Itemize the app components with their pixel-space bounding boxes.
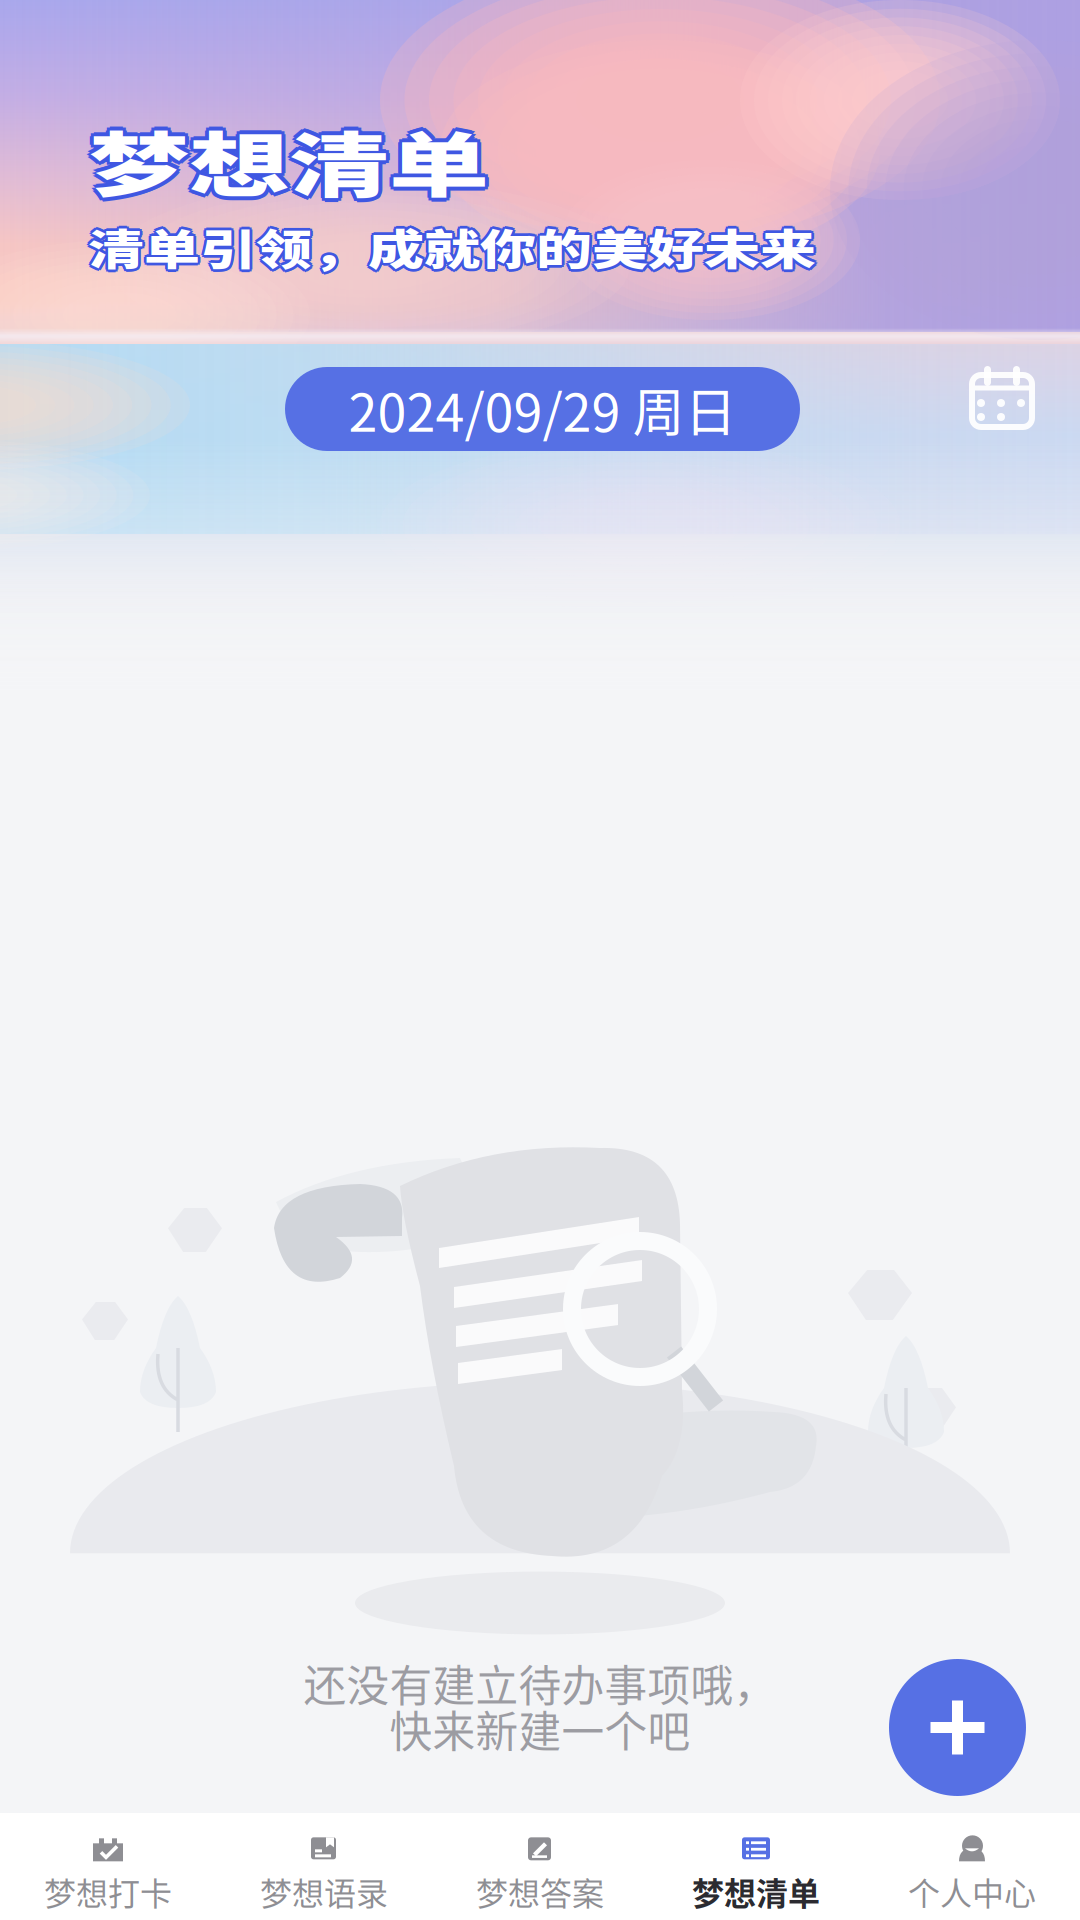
button[interactable]: 个人中心 (864, 1834, 1080, 1915)
staticText: 还没有建立待办事项哦， (303, 1652, 776, 1714)
staticText: 清单引领，成就你的美好未来 (90, 214, 818, 295)
staticText: 2024/09/29 周日 (348, 371, 736, 447)
staticText: 梦想清单 (86, 113, 486, 258)
staticText: 梦想清单 (89, 106, 489, 251)
staticText: 清单引领，成就你的美好未来 (86, 214, 814, 295)
staticText: 梦想答案 (476, 1868, 604, 1915)
staticText: 清单引领，成就你的美好未来 (88, 213, 816, 294)
staticText: 清单引领，成就你的美好未来 (86, 218, 814, 299)
staticText: 个人中心 (908, 1868, 1036, 1915)
button[interactable]: 梦想清单 (648, 1834, 864, 1915)
staticText: 清单引领，成就你的美好未来 (88, 216, 816, 297)
staticText: 梦想清单 (89, 110, 489, 255)
staticText: 清单引领，成就你的美好未来 (91, 216, 819, 297)
staticText: 梦想清单 (93, 110, 493, 255)
staticText: 清单引领，成就你的美好未来 (85, 216, 813, 297)
staticText: 梦想清单 (85, 110, 485, 255)
staticText: 梦想语录 (260, 1868, 388, 1915)
staticText: 梦想清单 (692, 1868, 820, 1915)
staticText: 梦想清单 (86, 107, 486, 252)
staticText: 梦想清单 (89, 114, 489, 259)
staticText: 梦想清单 (92, 107, 492, 252)
button[interactable]: Calendar (966, 360, 1038, 432)
button[interactable]: Add (889, 1659, 1026, 1796)
button[interactable]: 梦想语录 (216, 1834, 432, 1915)
staticText: 清单引领，成就你的美好未来 (90, 218, 818, 299)
staticText: 清单引领，成就你的美好未来 (88, 219, 816, 300)
button[interactable]: 2024/09/29 周日 (285, 367, 800, 451)
button[interactable]: 梦想答案 (432, 1834, 648, 1915)
staticText: 梦想打卡 (44, 1868, 172, 1915)
button[interactable]: 梦想打卡 (0, 1834, 216, 1915)
staticText: 快来新建一个吧 (389, 1698, 690, 1760)
staticText: 梦想清单 (92, 113, 492, 258)
